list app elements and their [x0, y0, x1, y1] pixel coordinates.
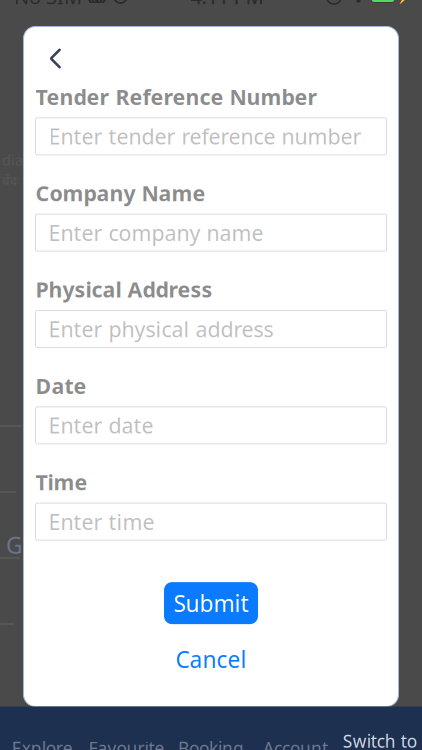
staticText: Account [263, 736, 328, 750]
staticText: Time [35, 468, 87, 496]
button[interactable]: Back [35, 40, 75, 76]
staticText: No SIM [14, 0, 82, 10]
staticText: Tender Reference Number [35, 82, 317, 111]
staticText: Booking [178, 736, 244, 750]
button[interactable]: Submit [164, 582, 258, 624]
staticText: Enter time [48, 507, 154, 536]
staticText: dia [2, 150, 23, 169]
button[interactable]: Switch to TSP [338, 706, 422, 750]
staticText: Cancel [175, 644, 246, 674]
staticText: Physical Address [35, 275, 212, 303]
button[interactable]: Favourite [84, 706, 169, 750]
button[interactable]: Enter time [35, 503, 386, 540]
staticText: Submit [173, 588, 248, 618]
staticText: Enter date [48, 411, 153, 439]
button[interactable]: Explore [0, 706, 84, 750]
staticText: Switch to TSP [343, 729, 417, 750]
staticText: Date [35, 371, 86, 400]
button[interactable]: Account [253, 706, 338, 750]
staticText: ⚡ [395, 0, 412, 4]
button[interactable]: Enter tender reference number [35, 118, 386, 155]
staticText: Enter company name [48, 218, 263, 247]
staticText: 4:11 PM [190, 0, 263, 10]
staticText: G [6, 530, 23, 560]
staticText: बेंद [2, 171, 17, 189]
button[interactable]: Enter date [35, 407, 386, 444]
staticText: Favourite [89, 736, 165, 750]
staticText: Explore [12, 736, 73, 750]
staticText: Company Name [35, 179, 205, 207]
staticText: Enter physical address [48, 315, 273, 343]
button[interactable]: Enter physical address [35, 310, 386, 347]
button[interactable]: Cancel [157, 636, 264, 682]
button[interactable]: Booking [169, 706, 253, 750]
staticText: Enter tender reference number [48, 122, 361, 150]
button[interactable]: Enter company name [35, 214, 386, 251]
